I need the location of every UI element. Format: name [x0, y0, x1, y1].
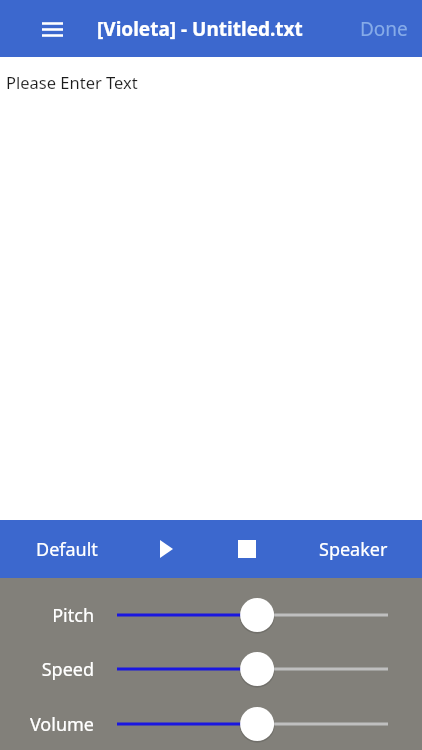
staticText: Speed: [41, 657, 94, 682]
staticText: Speaker: [319, 537, 388, 562]
button[interactable]: Menu: [32, 9, 72, 49]
button[interactable]: Play: [145, 528, 187, 570]
staticText: Done: [360, 16, 408, 42]
staticText: Default: [36, 537, 98, 562]
button[interactable]: Speaker: [305, 527, 402, 572]
button[interactable]: Done: [346, 6, 422, 52]
button[interactable]: Default: [22, 527, 112, 572]
button[interactable]: Volume slider: [107, 705, 398, 743]
staticText: Pitch: [52, 603, 94, 628]
button[interactable]: Stop: [226, 528, 268, 570]
staticText: [Violeta] - Untitled.txt: [97, 16, 303, 42]
staticText: Volume: [29, 712, 94, 737]
button[interactable]: Pitch slider: [107, 596, 398, 634]
staticText: Please Enter Text: [6, 71, 138, 93]
button[interactable]: Please Enter Text: [0, 57, 422, 520]
button[interactable]: Speed slider: [107, 650, 398, 688]
